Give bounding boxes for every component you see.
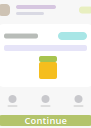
button[interactable]: Continue	[0, 115, 91, 126]
staticText: Continue	[24, 114, 66, 127]
